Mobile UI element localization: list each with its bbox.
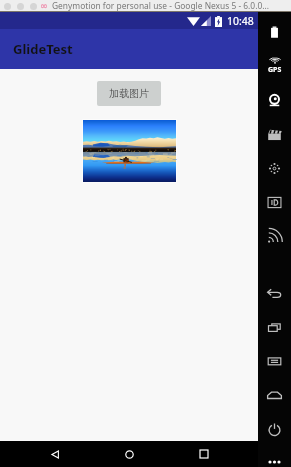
button[interactable]: Network — [258, 219, 291, 253]
button[interactable]: Identifiers — [258, 185, 291, 219]
button[interactable]: Video recording — [258, 117, 291, 151]
button[interactable]: Home — [109, 441, 149, 467]
button[interactable]: GPS — [258, 49, 291, 83]
staticText: ∞ — [40, 1, 48, 11]
staticText: Genymotion for personal use - Google Nex… — [52, 0, 269, 11]
button[interactable]: More options — [258, 457, 291, 467]
button[interactable]: Recents — [258, 310, 291, 344]
staticText: GlideTest — [13, 40, 73, 58]
button[interactable]: Camera — [258, 83, 291, 117]
button[interactable]: Accelerometer — [258, 151, 291, 185]
button[interactable]: Back — [35, 441, 75, 467]
staticText: 10:48 — [227, 14, 254, 28]
staticText: 加载图片 — [109, 87, 149, 100]
staticText: GPS — [268, 65, 282, 75]
button[interactable]: Menu — [258, 344, 291, 378]
button[interactable]: Recents — [184, 441, 224, 467]
button[interactable]: Battery — [258, 15, 291, 49]
button[interactable]: 加载图片 — [97, 81, 161, 106]
button[interactable]: Home — [258, 378, 291, 412]
button[interactable]: Back — [258, 276, 291, 310]
button[interactable]: Power — [258, 412, 291, 446]
